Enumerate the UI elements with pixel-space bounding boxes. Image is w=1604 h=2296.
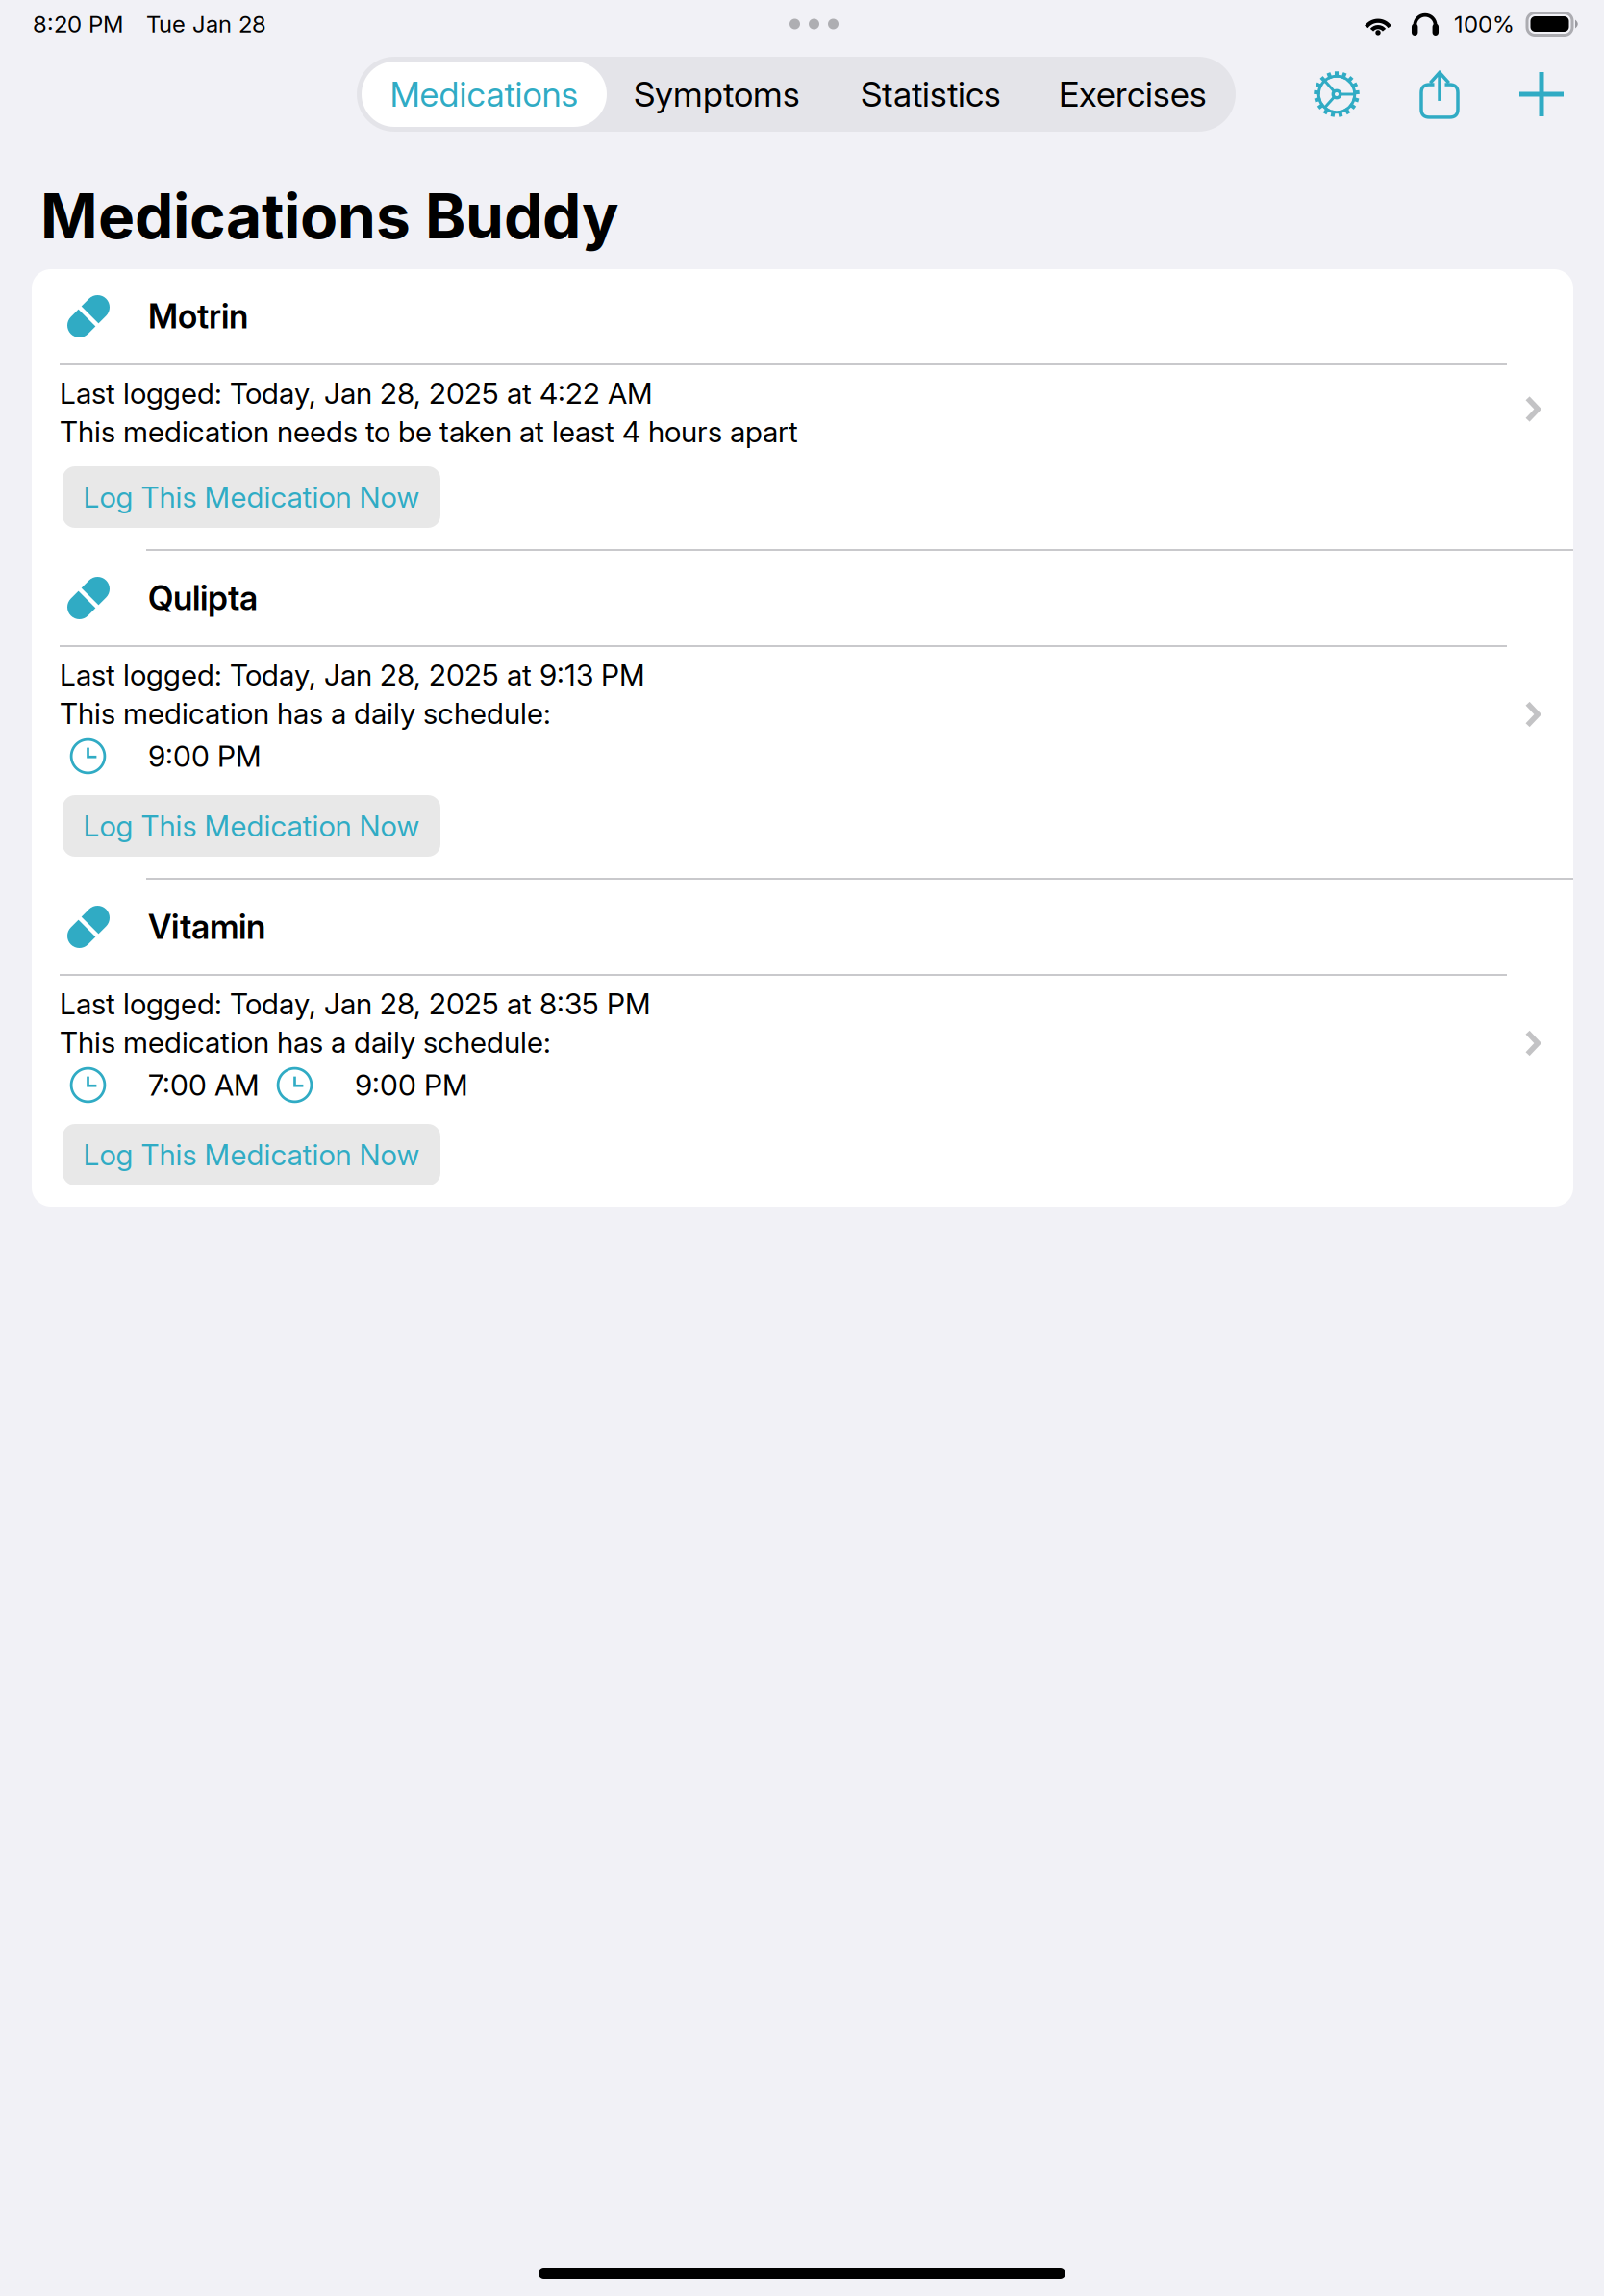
button[interactable]: Log This Medication Now bbox=[63, 795, 440, 857]
button[interactable]: Add medication bbox=[1519, 72, 1564, 116]
button[interactable]: Log This Medication Now bbox=[63, 1124, 440, 1185]
button[interactable]: Medications bbox=[362, 62, 607, 127]
staticText: Tue Jan 28 bbox=[146, 10, 266, 38]
staticText: Medications bbox=[390, 73, 578, 115]
staticText: Log This Medication Now bbox=[83, 1137, 420, 1172]
button[interactable]: Exercises bbox=[1035, 62, 1231, 127]
button[interactable]: Vitamin bbox=[32, 880, 1573, 1207]
staticText: Exercises bbox=[1059, 73, 1207, 115]
button[interactable]: Qulipta bbox=[32, 551, 1573, 878]
staticText: Statistics bbox=[861, 73, 1001, 115]
button[interactable]: Share bbox=[1421, 71, 1458, 117]
staticText: Medications Buddy bbox=[40, 179, 619, 253]
staticText: Vitamin bbox=[148, 907, 265, 947]
staticText: Last logged: Today, Jan 28, 2025 at 8:35… bbox=[60, 986, 651, 1021]
staticText: Symptoms bbox=[634, 73, 800, 115]
staticText: Last logged: Today, Jan 28, 2025 at 9:13… bbox=[60, 657, 645, 693]
button[interactable]: Symptoms bbox=[607, 62, 827, 127]
button[interactable]: Settings bbox=[1314, 71, 1360, 117]
staticText: 8:20 PM bbox=[33, 10, 123, 38]
staticText: Log This Medication Now bbox=[83, 808, 420, 844]
staticText: Log This Medication Now bbox=[83, 480, 420, 515]
staticText: Last logged: Today, Jan 28, 2025 at 4:22… bbox=[60, 376, 653, 411]
staticText: 9:00 PM bbox=[148, 739, 262, 774]
button[interactable]: Statistics bbox=[827, 62, 1035, 127]
button[interactable]: Motrin bbox=[32, 269, 1573, 549]
staticText: Motrin bbox=[148, 296, 248, 336]
staticText: 100% bbox=[1454, 10, 1515, 38]
staticText: This medication has a daily schedule: bbox=[60, 696, 551, 731]
staticText: Qulipta bbox=[148, 578, 258, 618]
button[interactable]: Log This Medication Now bbox=[63, 466, 440, 528]
staticText: This medication needs to be taken at lea… bbox=[60, 414, 798, 449]
staticText: This medication has a daily schedule: bbox=[60, 1025, 551, 1060]
staticText: 7:00 AM bbox=[148, 1068, 260, 1103]
staticText: 9:00 PM bbox=[355, 1068, 468, 1103]
